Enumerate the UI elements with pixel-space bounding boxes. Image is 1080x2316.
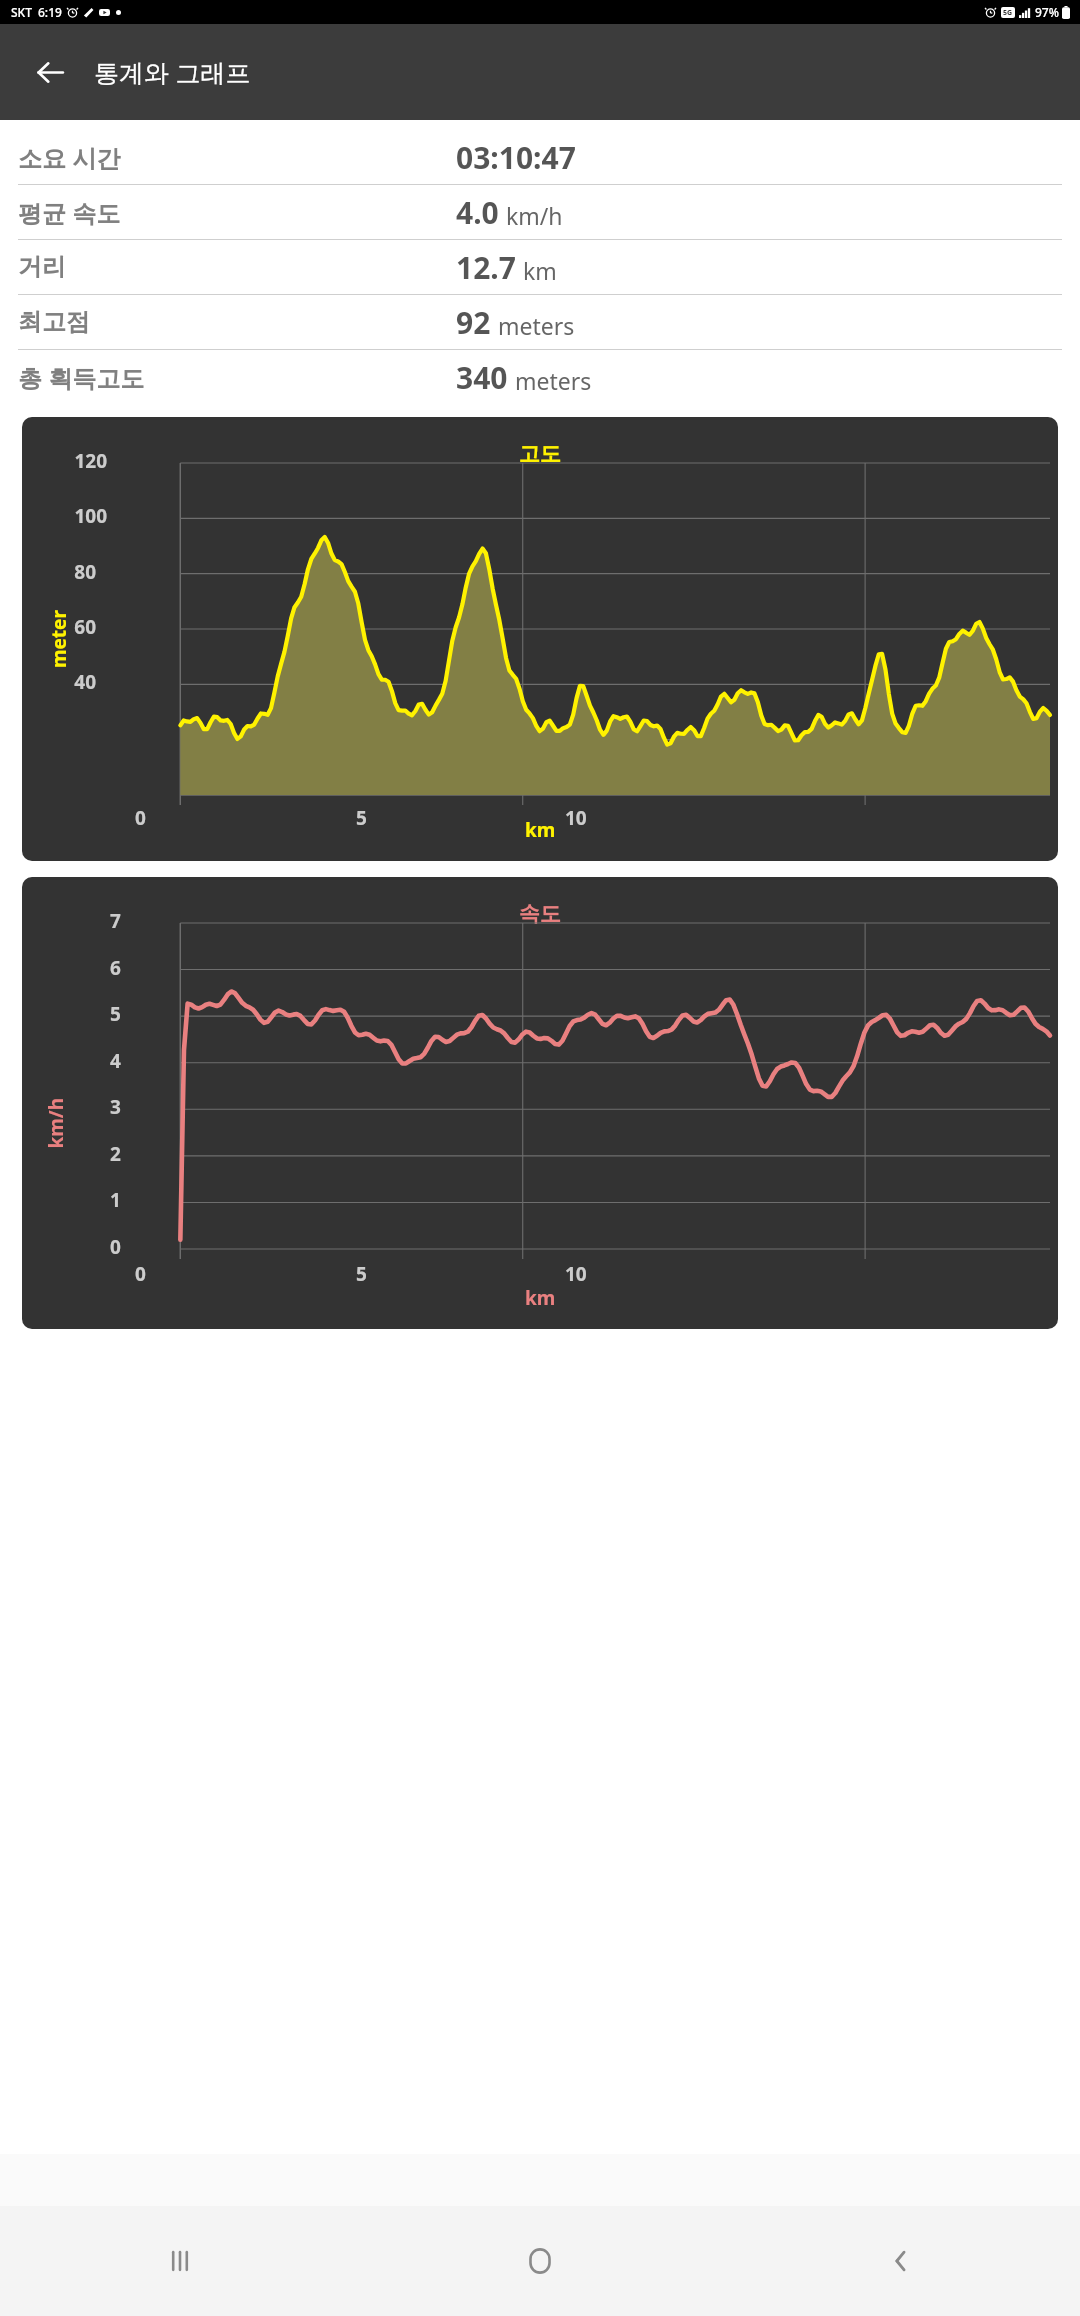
staticText: 03:10:47	[456, 137, 576, 178]
staticText: 5	[356, 805, 367, 831]
staticText: 평균 속도	[18, 196, 456, 229]
button[interactable]: 속도	[22, 877, 1058, 1329]
button[interactable]: Back	[720, 2206, 1080, 2316]
button[interactable]: 소요 시간	[18, 130, 1062, 184]
staticText: 4.0	[456, 192, 499, 233]
button[interactable]: 평균 속도	[18, 185, 1062, 239]
staticText: 10	[565, 805, 587, 831]
staticText: 120	[74, 448, 107, 474]
staticText: 80	[74, 559, 96, 585]
staticText: 5	[110, 1001, 121, 1027]
staticText: 최고점	[18, 307, 456, 337]
staticText: km	[525, 817, 556, 843]
staticText: 6:19	[38, 4, 62, 20]
staticText: 통계와 그래프	[94, 55, 251, 89]
staticText: meter	[46, 610, 72, 668]
button[interactable]: Recents	[0, 2206, 360, 2316]
staticText: km	[525, 1285, 556, 1311]
staticText: 7	[110, 908, 121, 934]
button[interactable]: 거리	[18, 240, 1062, 294]
staticText: 10	[565, 1261, 587, 1287]
button[interactable]: Home	[360, 2206, 720, 2316]
staticText: 92	[456, 302, 491, 343]
staticText: 100	[74, 503, 107, 529]
staticText: SKT	[11, 4, 32, 20]
staticText: km/h	[506, 200, 563, 231]
staticText: 총 획득고도	[18, 361, 456, 394]
staticText: 5	[356, 1261, 367, 1287]
staticText: km	[523, 255, 557, 286]
staticText: 5G	[1003, 8, 1013, 18]
button[interactable]: 고도	[22, 417, 1058, 861]
staticText: 3	[110, 1094, 121, 1120]
staticText: 6	[110, 955, 121, 981]
staticText: 60	[74, 614, 96, 640]
button[interactable]: Back	[22, 44, 78, 100]
staticText: 2	[110, 1141, 121, 1167]
button[interactable]: 최고점	[18, 295, 1062, 349]
staticText: 4	[110, 1048, 121, 1074]
staticText: km/h	[42, 1097, 68, 1148]
staticText: 340	[456, 357, 508, 398]
staticText: meters	[515, 365, 592, 396]
staticText: 고도	[519, 441, 561, 467]
button[interactable]: 총 획득고도	[18, 350, 1062, 404]
staticText: 1	[110, 1187, 121, 1213]
staticText: 속도	[519, 901, 561, 927]
staticText: 12.7	[456, 247, 516, 288]
staticText: 소요 시간	[18, 141, 456, 174]
staticText: 97%	[1035, 4, 1059, 20]
staticText: 0	[135, 1261, 146, 1287]
staticText: meters	[498, 310, 575, 341]
staticText: 0	[135, 805, 146, 831]
staticText: 40	[74, 669, 96, 695]
staticText: 거리	[18, 252, 456, 282]
staticText: 0	[110, 1234, 121, 1260]
